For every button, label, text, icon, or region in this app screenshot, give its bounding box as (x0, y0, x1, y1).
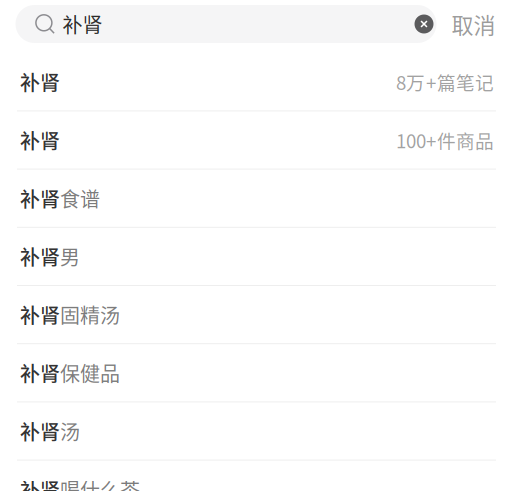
button[interactable]: 补肾 (15, 5, 436, 43)
staticText: 食谱 (60, 184, 100, 213)
staticText: 保健品 (60, 358, 120, 387)
staticText: 补肾 (20, 475, 60, 491)
staticText: 补肾 (20, 242, 60, 271)
staticText: 取消 (451, 8, 495, 40)
button[interactable]: 补肾 (0, 111, 515, 170)
button[interactable]: 补肾 (0, 461, 515, 491)
button[interactable]: 补肾 (0, 53, 515, 111)
staticText: 补肾 (20, 358, 60, 387)
staticText: 补肾 (20, 125, 60, 154)
staticText: 补肾 (20, 184, 60, 213)
button[interactable]: 补肾 (0, 344, 515, 402)
staticText: 补肾 (20, 67, 60, 96)
button[interactable]: 补肾 (0, 228, 515, 286)
staticText: 汤 (60, 416, 80, 445)
staticText: 补肾 (20, 416, 60, 445)
button[interactable]: 补肾 (0, 286, 515, 344)
staticText: 固精汤 (60, 300, 120, 329)
staticText: 100+ 件商品 (396, 126, 494, 153)
staticText: 补肾 (20, 300, 60, 329)
staticText: 喝什么茶 (60, 475, 140, 491)
button[interactable]: 补肾 (0, 402, 515, 461)
button[interactable]: 取消 (436, 5, 499, 43)
staticText: 8万 + 篇笔记 (396, 68, 494, 95)
button[interactable]: 清除 (414, 14, 433, 33)
button[interactable]: 补肾 (0, 170, 515, 228)
staticText: 男 (60, 242, 80, 271)
staticText: 补肾 (62, 9, 102, 38)
